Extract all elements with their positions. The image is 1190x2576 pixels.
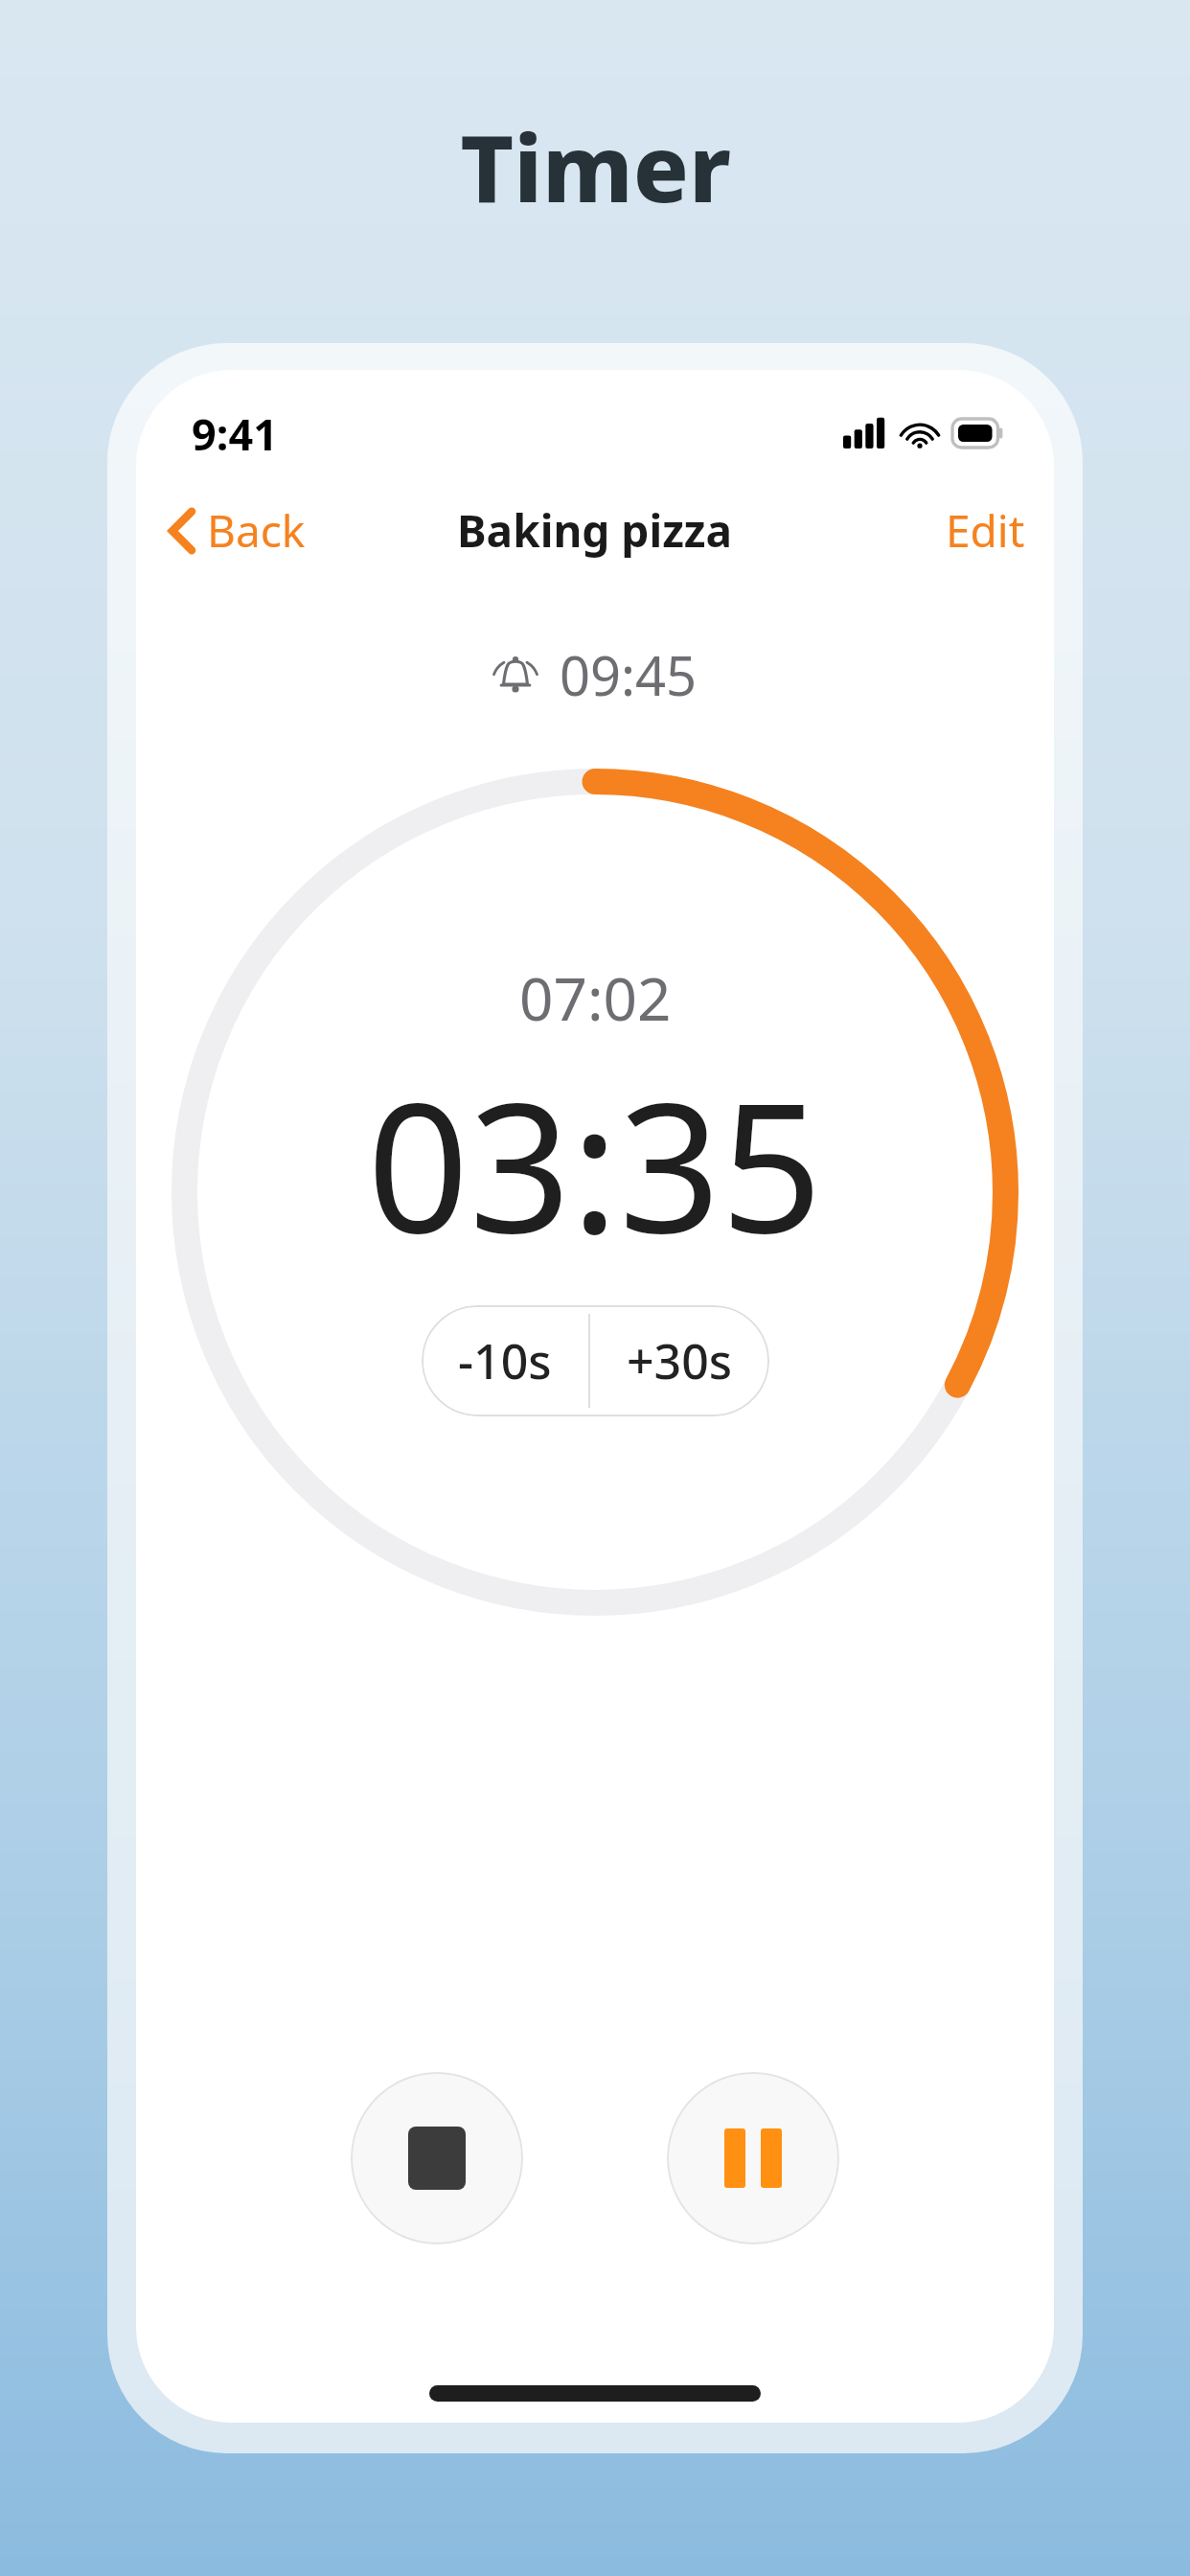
staticText: Baking pizza bbox=[457, 500, 733, 561]
staticText: +30s bbox=[627, 1328, 733, 1393]
staticText: 03:35 bbox=[367, 1042, 823, 1284]
staticText: Timer bbox=[460, 103, 731, 229]
staticText: 07:02 bbox=[519, 957, 672, 1038]
staticText: Edit bbox=[946, 500, 1025, 561]
button[interactable]: -10s bbox=[422, 1305, 588, 1416]
button[interactable]: Pause timer bbox=[667, 2072, 839, 2244]
button[interactable]: Edit bbox=[917, 491, 1054, 570]
button[interactable]: +30s bbox=[590, 1305, 769, 1416]
staticText: 09:45 bbox=[560, 638, 698, 711]
staticText: Back bbox=[207, 500, 306, 561]
button[interactable]: Stop timer bbox=[351, 2072, 523, 2244]
staticText: 9:41 bbox=[192, 404, 278, 463]
staticText: -10s bbox=[458, 1328, 552, 1393]
button[interactable]: Back bbox=[136, 491, 325, 570]
